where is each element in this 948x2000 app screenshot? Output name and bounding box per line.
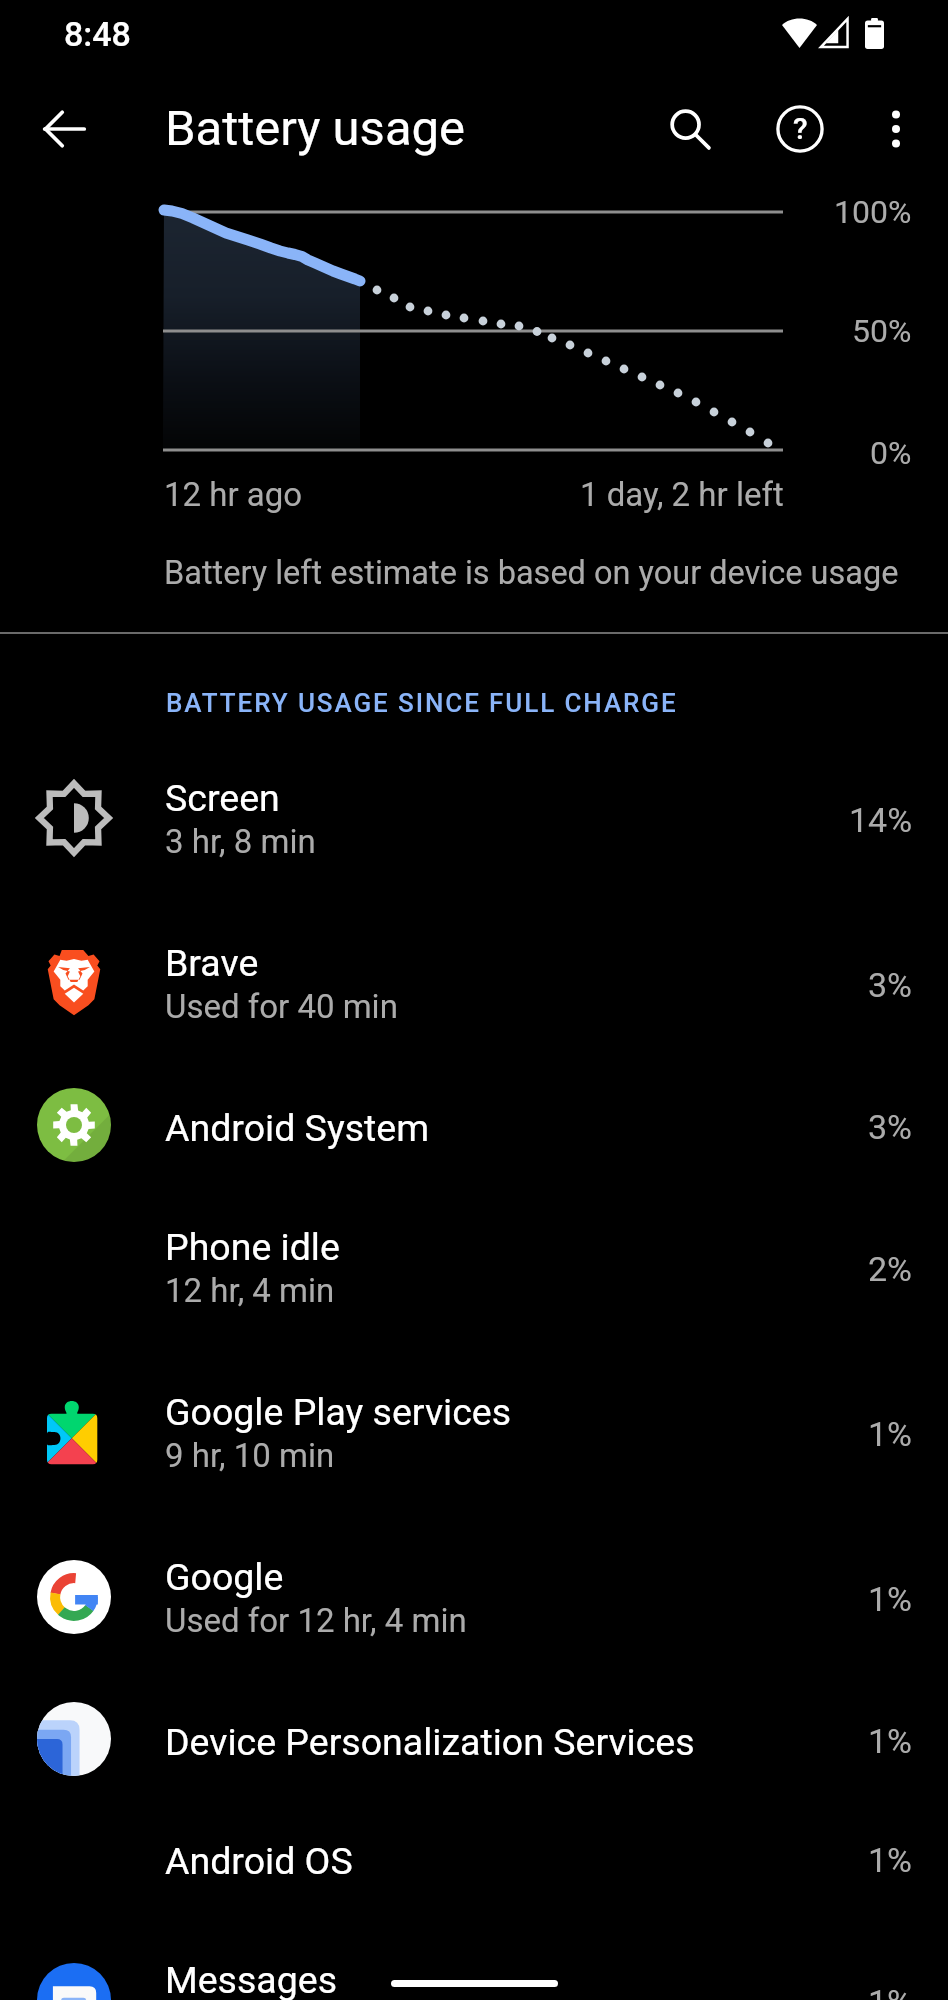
staticText: 50%: [852, 312, 912, 350]
staticText: 3%: [868, 965, 913, 1005]
button[interactable]: Messages: [0, 1924, 948, 2000]
staticText: Used for 12 hr, 4 min: [165, 1601, 467, 1640]
button[interactable]: More options: [858, 91, 934, 167]
staticText: ?: [793, 111, 808, 146]
staticText: 1%: [868, 1982, 913, 2000]
staticText: 8:48: [64, 14, 131, 54]
staticText: 1%: [868, 1721, 913, 1761]
staticText: 3%: [868, 1107, 913, 1147]
staticText: Android OS: [165, 1839, 353, 1883]
button[interactable]: Android OS: [0, 1805, 948, 1924]
button[interactable]: Google Play services: [0, 1356, 948, 1521]
button[interactable]: Navigate up: [28, 93, 100, 165]
staticText: Screen: [165, 776, 280, 820]
staticText: 1%: [868, 1414, 913, 1454]
staticText: 100%: [834, 193, 912, 231]
button[interactable]: Phone idle: [0, 1191, 948, 1356]
staticText: 1 day, 2 hr left: [580, 475, 784, 514]
staticText: Google: [165, 1555, 284, 1599]
staticText: Battery left estimate is based on your d…: [164, 554, 899, 592]
staticText: Phone idle: [165, 1225, 340, 1269]
staticText: Brave: [165, 941, 259, 985]
button[interactable]: Brave: [0, 907, 948, 1072]
staticText: Messages: [165, 1958, 338, 2000]
staticText: BATTERY USAGE SINCE FULL CHARGE: [166, 688, 678, 718]
button[interactable]: Device Personalization Services: [0, 1686, 948, 1805]
staticText: 12 hr, 4 min: [165, 1271, 335, 1310]
button[interactable]: Screen: [0, 742, 948, 907]
staticText: 9 hr, 10 min: [165, 1436, 335, 1475]
staticText: Google Play services: [165, 1390, 512, 1434]
staticText: Device Personalization Services: [165, 1720, 695, 1764]
staticText: 1%: [868, 1840, 913, 1880]
staticText: 2%: [868, 1249, 913, 1289]
staticText: 14%: [849, 800, 913, 840]
button[interactable]: Android System: [0, 1072, 948, 1191]
staticText: Used for 40 min: [165, 987, 398, 1026]
staticText: 12 hr ago: [164, 475, 303, 514]
staticText: 0%: [870, 434, 912, 472]
staticText: 3 hr, 8 min: [165, 822, 316, 861]
staticText: Battery usage: [165, 100, 466, 157]
button[interactable]: Google: [0, 1521, 948, 1686]
button[interactable]: Search: [652, 91, 728, 167]
staticText: Android System: [165, 1106, 430, 1150]
button[interactable]: Help: [762, 91, 838, 167]
staticText: 1%: [868, 1579, 913, 1619]
